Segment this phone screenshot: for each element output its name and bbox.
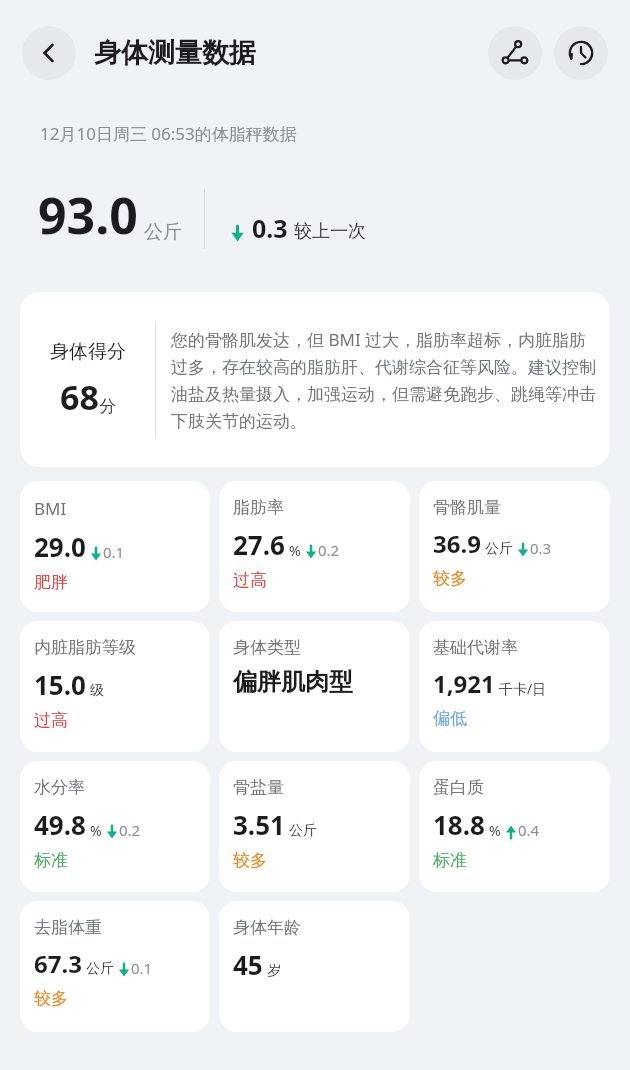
- staticText: 67.3: [34, 947, 82, 980]
- staticText: 骨骼肌量: [433, 497, 501, 518]
- staticText: 身体测量数据: [94, 36, 256, 70]
- staticText: 公斤: [289, 822, 317, 840]
- button[interactable]: 脂肪率: [219, 481, 410, 612]
- staticText: 0.2: [119, 820, 141, 840]
- staticText: 1,921: [433, 667, 495, 700]
- staticText: 较多: [34, 988, 68, 1009]
- button[interactable]: BMI: [20, 481, 210, 612]
- staticText: 29.0: [34, 529, 86, 564]
- button[interactable]: 身体类型: [219, 621, 410, 752]
- staticText: 脂肪率: [233, 497, 284, 518]
- staticText: 较多: [433, 568, 467, 589]
- staticText: 身体得分: [50, 340, 126, 364]
- staticText: 93.0: [38, 181, 138, 249]
- staticText: 标准: [433, 850, 467, 871]
- button[interactable]: 身体年龄: [219, 901, 410, 1032]
- staticText: 肥胖: [34, 572, 68, 593]
- staticText: 公斤: [86, 960, 114, 978]
- staticText: 较多: [233, 850, 267, 871]
- staticText: 标准: [34, 850, 68, 871]
- staticText: BMI: [34, 497, 67, 520]
- staticText: 水分率: [34, 777, 85, 798]
- staticText: 级: [90, 682, 104, 700]
- staticText: 0.1: [131, 958, 153, 978]
- staticText: 15.0: [34, 667, 86, 702]
- staticText: 68: [60, 374, 99, 420]
- staticText: 内脏脂肪等级: [34, 637, 136, 658]
- staticText: 36.9: [433, 527, 481, 560]
- staticText: 身体年龄: [233, 917, 301, 938]
- button[interactable]: 内脏脂肪等级: [20, 621, 210, 752]
- staticText: 千卡/日: [499, 679, 547, 698]
- button[interactable]: 水分率: [20, 761, 210, 892]
- staticText: 偏低: [433, 708, 467, 729]
- staticText: 18.8: [433, 807, 485, 842]
- staticText: %: [90, 821, 102, 840]
- staticText: %: [289, 541, 301, 560]
- staticText: 去脂体重: [34, 917, 102, 938]
- staticText: 分: [99, 396, 116, 417]
- staticText: 0.3: [252, 211, 288, 245]
- staticText: 过高: [34, 710, 68, 731]
- staticText: 3.51: [233, 807, 285, 842]
- staticText: 0.4: [518, 820, 540, 840]
- button[interactable]: 身体得分: [20, 292, 610, 467]
- staticText: 过高: [233, 570, 267, 591]
- staticText: 12月10日周三 06:53的体脂秤数据: [40, 122, 297, 145]
- button[interactable]: History: [554, 26, 608, 80]
- staticText: 您的骨骼肌发达，但 BMI 过大，脂肪率超标，内脏脂肪过多，存在较高的脂肪肝、代…: [171, 328, 596, 432]
- button[interactable]: Back: [22, 26, 76, 80]
- staticText: 公斤: [485, 540, 513, 558]
- staticText: 49.8: [34, 807, 86, 842]
- staticText: 岁: [267, 962, 281, 980]
- staticText: 蛋白质: [433, 777, 484, 798]
- staticText: 0.3: [530, 538, 552, 558]
- staticText: 骨盐量: [233, 777, 284, 798]
- button[interactable]: 去脂体重: [20, 901, 210, 1032]
- button[interactable]: 骨盐量: [219, 761, 410, 892]
- staticText: 0.2: [318, 540, 340, 560]
- button[interactable]: 基础代谢率: [419, 621, 610, 752]
- staticText: 27.6: [233, 527, 285, 562]
- button[interactable]: Trend: [488, 26, 542, 80]
- staticText: 身体类型: [233, 637, 301, 658]
- button[interactable]: 骨骼肌量: [419, 481, 610, 612]
- button[interactable]: 蛋白质: [419, 761, 610, 892]
- staticText: 45: [233, 947, 263, 982]
- staticText: 公斤: [144, 220, 182, 244]
- staticText: 较上一次: [294, 220, 366, 243]
- staticText: 基础代谢率: [433, 637, 518, 658]
- staticText: 0.1: [103, 542, 125, 562]
- staticText: 偏胖肌肉型: [233, 667, 353, 697]
- staticText: %: [489, 821, 501, 840]
